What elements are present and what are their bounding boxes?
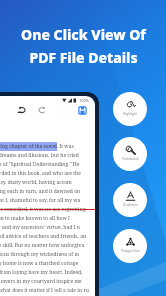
staticText: spurned the good advice of teachers and … <box>0 233 87 240</box>
staticText: 100% <box>79 98 90 103</box>
staticText: So I decided then to make known to all h… <box>0 215 70 222</box>
staticText: want of talent, what does it matter if I… <box>0 287 89 294</box>
staticText: and reading, that I, shameful to say, fo… <box>0 197 81 204</box>
staticText: Paintbrush <box>122 157 139 161</box>
staticText: One Click View Of <box>21 25 146 44</box>
button[interactable]: Redo <box>37 105 47 115</box>
staticText: imperial favour and my ancestors' virtue… <box>0 224 80 231</box>
button[interactable]: Highlight <box>113 92 147 126</box>
button[interactable]: Save <box>78 106 87 115</box>
staticText: PDF File Details <box>29 48 138 67</box>
staticText: would stop me from laying bare my heart.… <box>0 269 83 276</box>
staticText: it could never be remedied, it was no us… <box>0 206 86 213</box>
staticText: Highlight <box>123 112 137 116</box>
staticText: about in this busy, dusty world, having … <box>0 179 72 186</box>
button[interactable]: Underline <box>113 183 147 217</box>
staticText: and I was oblivious through my wickednes… <box>0 251 80 258</box>
staticText: when considering each in turn, and it da… <box>0 188 81 195</box>
staticText: story of the jade of "Spiritual Understa… <box>0 161 80 168</box>
staticText: moon and the flowers in my courtyard ins… <box>0 278 82 285</box>
staticText: Underline <box>123 203 138 207</box>
staticText: Polygon line <box>121 249 140 253</box>
staticText: without a single skill. But no matter ho… <box>0 242 85 249</box>
staticText: tale of his past dreams and illusions, b… <box>0 152 79 159</box>
button[interactable]: Polygon line <box>113 229 147 263</box>
staticText: This is the opening chapter of the novel… <box>0 143 74 150</box>
button[interactable]: Paintbrush <box>113 137 147 171</box>
button[interactable]: Undo <box>17 105 27 115</box>
staticText: Even though my home is now a thatched co… <box>0 260 79 267</box>
staticText: the events recorded in this book, and wh… <box>0 170 81 177</box>
